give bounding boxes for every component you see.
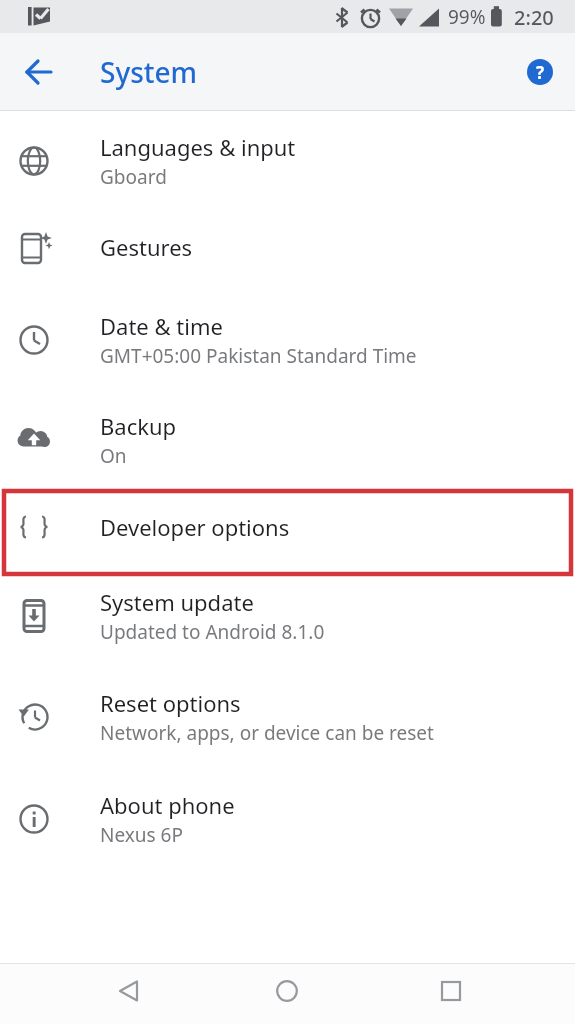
- button[interactable]: Reset options: [0, 667, 575, 767]
- staticText: GMT+05:00 Pakistan Standard Time: [100, 343, 417, 369]
- button[interactable]: [257, 963, 317, 1024]
- button[interactable]: [15, 48, 63, 96]
- staticText: On: [100, 443, 127, 469]
- staticText: Reset options: [100, 688, 241, 718]
- staticText: About phone: [100, 790, 235, 820]
- staticText: Languages & input: [100, 132, 296, 162]
- staticText: Gestures: [100, 232, 193, 262]
- button[interactable]: Date & time: [0, 290, 575, 390]
- staticText: Date & time: [100, 311, 223, 341]
- staticText: Updated to Android 8.1.0: [100, 619, 325, 645]
- staticText: Developer options: [100, 512, 290, 542]
- button[interactable]: ?: [520, 52, 560, 92]
- button[interactable]: Languages & input: [0, 111, 575, 211]
- button[interactable]: Developer options: [0, 477, 575, 577]
- staticText: System: [100, 53, 198, 91]
- staticText: Nexus 6P: [100, 822, 183, 848]
- button[interactable]: Backup: [0, 390, 575, 490]
- staticText: 99%: [448, 4, 486, 30]
- staticText: ?: [536, 61, 545, 84]
- staticText: 2:20: [514, 4, 554, 31]
- staticText: Gboard: [100, 164, 167, 190]
- button[interactable]: [421, 963, 481, 1024]
- button[interactable]: System update: [0, 566, 575, 666]
- staticText: Network, apps, or device can be reset: [100, 720, 434, 746]
- staticText: Backup: [100, 411, 177, 441]
- button[interactable]: About phone: [0, 769, 575, 869]
- staticText: System update: [100, 587, 254, 617]
- button[interactable]: [99, 963, 159, 1024]
- button[interactable]: Gestures: [0, 197, 575, 297]
